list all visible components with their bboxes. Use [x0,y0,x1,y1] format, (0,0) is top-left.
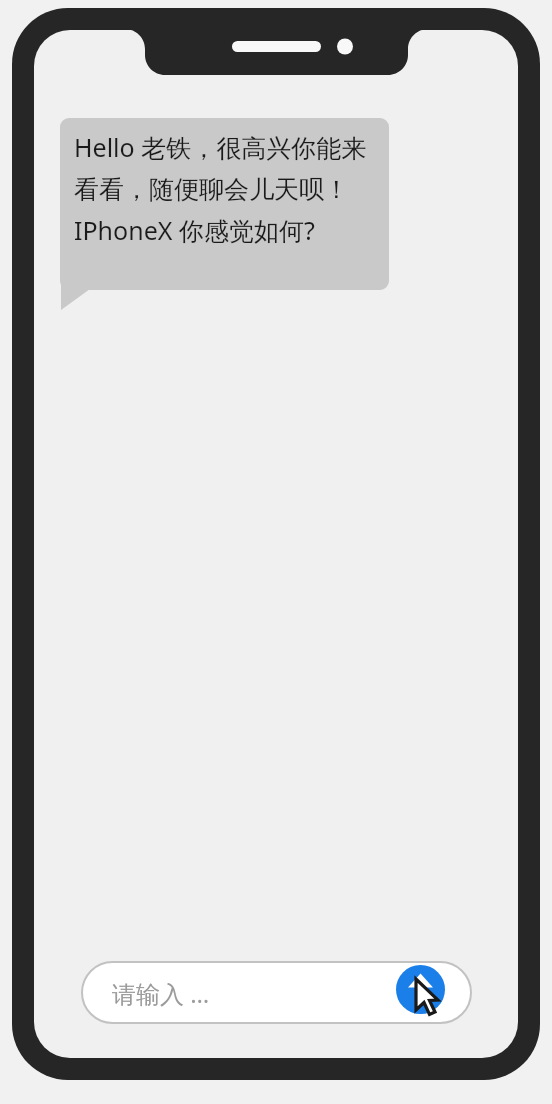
button[interactable]: Send message [396,965,445,1014]
staticText: 请输入 … [112,977,210,1010]
button[interactable]: 请输入 … [82,962,471,1023]
staticText: Hello 老铁，很高兴你能来看看，随便聊会儿天呗！IPhoneX 你感觉如何? [74,130,380,290]
button[interactable]: Hello 老铁，很高兴你能来看看，随便聊会儿天呗！IPhoneX 你感觉如何? [60,118,389,310]
